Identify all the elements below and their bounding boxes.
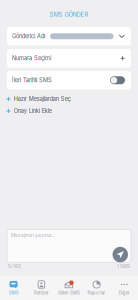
button[interactable]: Hazır Mesajlardan Seç [6,94,132,103]
staticText: Diğer [119,290,130,295]
staticText: Raporlar [88,290,106,295]
staticText: Hazır Mesajlardan Seç [14,96,71,102]
button[interactable]: SMS [0,276,28,300]
staticText: 0/160 [8,264,21,269]
button[interactable]: Gönderici Adı [7,27,131,45]
staticText: Gönderici Adı [12,33,45,40]
button[interactable]: Gönder [112,247,128,262]
button[interactable]: Rehber [28,276,55,300]
staticText: Rehber [34,290,49,295]
staticText: Gelen SMS [58,290,80,295]
staticText: SMS [9,290,19,295]
staticText: 1 SMS [117,264,130,269]
staticText: SMS GÖNDER [49,11,88,18]
staticText: Numara Seçimi [12,55,51,62]
button[interactable]: Numara Seçimi [7,49,131,67]
button[interactable]: Onay Linki Ekle [6,106,132,115]
button[interactable]: Raporlar [83,276,110,300]
button[interactable]: Diğer [110,276,138,300]
button[interactable]: Gelen SMS [55,276,83,300]
staticText: İleri Tarihli SMS [12,77,52,84]
button[interactable]: İleri Tarihli SMS [7,71,131,89]
staticText: Onay Linki Ekle [14,108,52,114]
staticText: Mesajınızı yazınız.. [11,232,54,238]
